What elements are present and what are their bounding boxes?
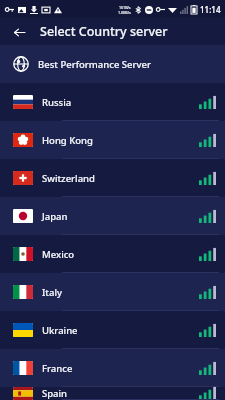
staticText: Italy — [42, 286, 199, 299]
button[interactable]: Ukraine — [0, 311, 225, 349]
staticText: Ukraine — [42, 324, 199, 337]
staticText: France — [42, 362, 199, 375]
staticText: 161B/s — [119, 5, 131, 10]
staticText: Hong Kong — [42, 134, 199, 147]
staticText: Mexico — [42, 248, 199, 261]
staticText: Switzerland — [42, 172, 199, 185]
staticText: 11:14 — [200, 4, 221, 15]
button[interactable]: Italy — [0, 273, 225, 311]
button[interactable]: Switzerland — [0, 159, 225, 197]
button[interactable]: Hong Kong — [0, 121, 225, 159]
staticText: 1.0KB/s — [118, 10, 131, 15]
staticText: Russia — [42, 96, 199, 109]
staticText: Spain — [42, 387, 199, 400]
staticText: Japan — [42, 210, 199, 223]
staticText: Best Performance Server — [38, 58, 152, 71]
button[interactable]: Mexico — [0, 235, 225, 273]
button[interactable]: Spain — [0, 387, 225, 400]
button[interactable]: Best Performance Server — [0, 45, 225, 83]
staticText: Select Country server — [40, 23, 168, 40]
button[interactable]: Back — [8, 21, 30, 43]
button[interactable]: France — [0, 349, 225, 387]
button[interactable]: Russia — [0, 83, 225, 121]
button[interactable]: Japan — [0, 197, 225, 235]
